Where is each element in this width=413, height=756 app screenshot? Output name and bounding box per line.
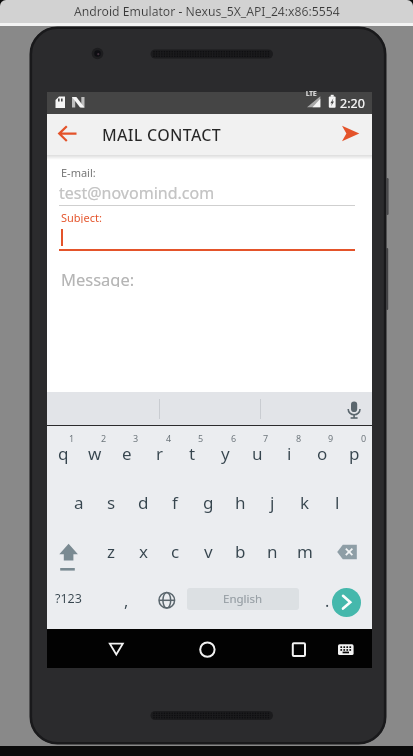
- button[interactable]: g: [192, 489, 224, 515]
- button[interactable]: p: [338, 440, 370, 466]
- staticText: LTE: [306, 89, 317, 98]
- button[interactable]: m: [289, 538, 321, 564]
- staticText: o: [317, 442, 328, 465]
- button[interactable]: s: [95, 489, 127, 515]
- button[interactable]: a: [63, 489, 95, 515]
- button[interactable]: [332, 588, 361, 617]
- staticText: t: [189, 442, 196, 465]
- staticText: test@novomind.com: [59, 182, 215, 201]
- button[interactable]: h: [224, 489, 256, 515]
- staticText: h: [235, 491, 246, 514]
- staticText: i: [287, 442, 292, 465]
- staticText: w: [88, 442, 102, 465]
- staticText: 3: [133, 432, 139, 444]
- staticText: 0: [361, 432, 367, 444]
- button[interactable]: q: [47, 440, 79, 466]
- button[interactable]: Message:: [61, 268, 191, 287]
- button[interactable]: v: [192, 538, 224, 564]
- staticText: 6: [231, 432, 237, 444]
- staticText: x: [139, 540, 148, 563]
- button[interactable]: e: [111, 440, 143, 466]
- button[interactable]: [50, 118, 84, 150]
- button[interactable]: y: [209, 440, 241, 466]
- staticText: 2: [101, 432, 107, 444]
- staticText: p: [349, 442, 360, 465]
- button[interactable]: ?123: [50, 588, 86, 608]
- staticText: 4: [166, 432, 172, 444]
- staticText: English: [223, 591, 263, 607]
- staticText: ?123: [55, 590, 82, 607]
- button[interactable]: l: [321, 489, 353, 515]
- staticText: 1: [69, 432, 75, 444]
- staticText: u: [252, 442, 263, 465]
- button[interactable]: z: [95, 538, 127, 564]
- button[interactable]: English: [187, 588, 299, 610]
- button[interactable]: [336, 637, 358, 661]
- button[interactable]: x: [127, 538, 159, 564]
- staticText: z: [107, 540, 115, 563]
- button[interactable]: u: [241, 440, 273, 466]
- staticText: Subject:: [61, 210, 102, 223]
- button[interactable]: r: [144, 440, 176, 466]
- staticText: r: [156, 442, 164, 465]
- staticText: l: [335, 491, 340, 514]
- staticText: k: [300, 491, 310, 514]
- button[interactable]: .: [315, 590, 339, 610]
- staticText: b: [235, 540, 246, 563]
- button[interactable]: o: [306, 440, 338, 466]
- staticText: y: [221, 442, 230, 465]
- button[interactable]: [195, 637, 221, 661]
- button[interactable]: k: [289, 489, 321, 515]
- button[interactable]: n: [256, 538, 288, 564]
- staticText: n: [267, 540, 278, 563]
- staticText: Android Emulator - Nexus_5X_API_24:x86:5…: [74, 3, 340, 20]
- staticText: .: [325, 590, 330, 610]
- staticText: j: [270, 491, 275, 514]
- button[interactable]: i: [273, 440, 305, 466]
- staticText: s: [107, 491, 116, 514]
- staticText: 9: [328, 432, 334, 444]
- staticText: c: [171, 540, 180, 563]
- button[interactable]: f: [159, 489, 191, 515]
- button[interactable]: j: [256, 489, 288, 515]
- button[interactable]: b: [224, 538, 256, 564]
- staticText: MAIL CONTACT: [102, 124, 222, 146]
- button[interactable]: [158, 592, 176, 610]
- staticText: 8: [296, 432, 302, 444]
- staticText: a: [74, 491, 84, 514]
- staticText: v: [204, 540, 213, 563]
- staticText: f: [172, 491, 178, 514]
- staticText: e: [122, 442, 132, 465]
- staticText: g: [203, 491, 214, 514]
- button[interactable]: ,: [114, 590, 138, 610]
- staticText: m: [297, 540, 313, 563]
- button[interactable]: [334, 538, 362, 566]
- button[interactable]: [55, 538, 83, 566]
- staticText: q: [58, 442, 69, 465]
- button[interactable]: [104, 637, 130, 661]
- staticText: E-mail:: [61, 165, 96, 178]
- button[interactable]: c: [159, 538, 191, 564]
- staticText: 2:20: [340, 95, 365, 112]
- staticText: ,: [124, 590, 129, 610]
- staticText: 5: [198, 432, 204, 444]
- button[interactable]: t: [176, 440, 208, 466]
- staticText: Message:: [61, 268, 135, 287]
- button[interactable]: [334, 118, 368, 150]
- staticText: 7: [263, 432, 269, 444]
- button[interactable]: w: [79, 440, 111, 466]
- staticText: d: [138, 491, 149, 514]
- button[interactable]: [284, 637, 310, 661]
- button[interactable]: d: [127, 489, 159, 515]
